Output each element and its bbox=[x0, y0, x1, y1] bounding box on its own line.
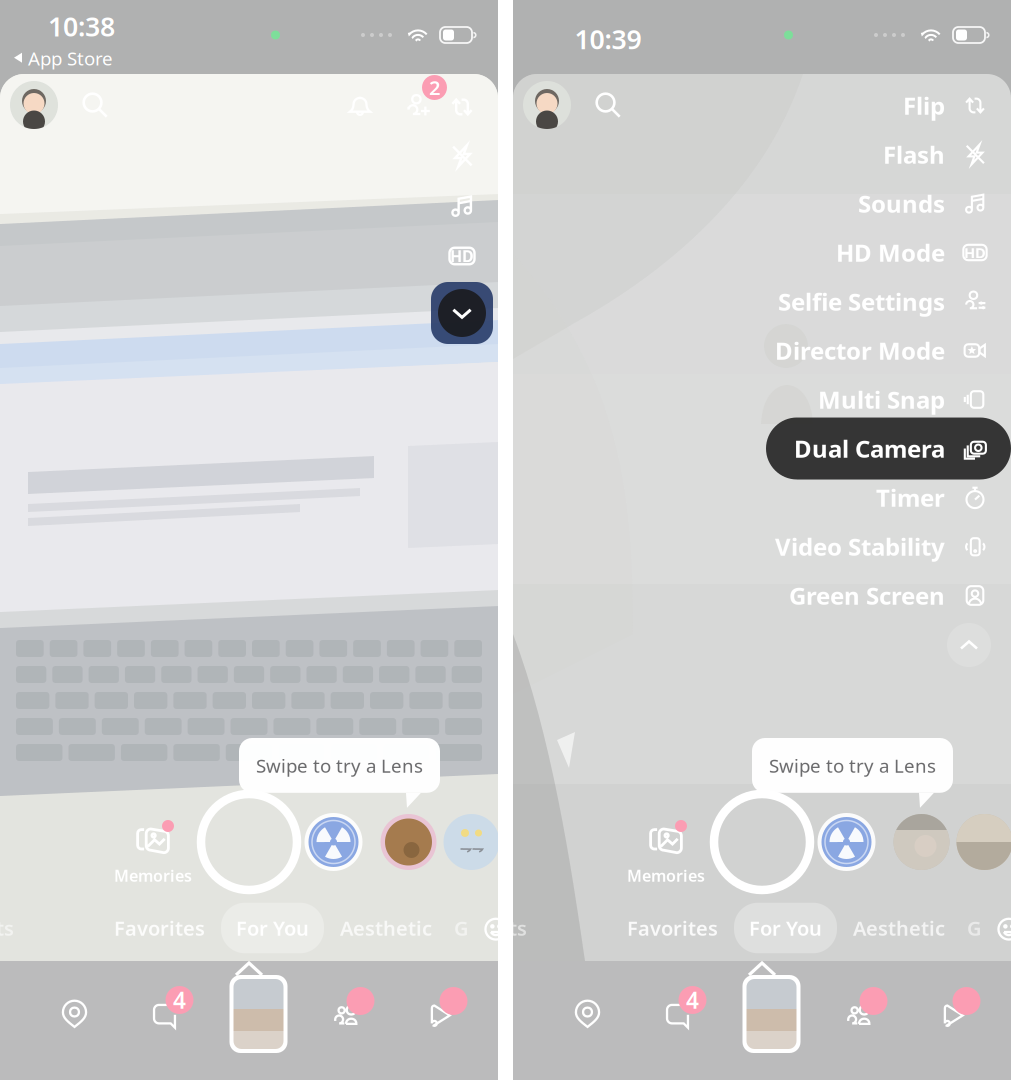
button[interactable]: For You bbox=[734, 903, 837, 953]
staticText: Dual Camera bbox=[794, 433, 945, 464]
button[interactable]: Capture bbox=[710, 790, 814, 894]
button[interactable]: Camera bbox=[725, 974, 817, 1054]
staticText: Green Screen bbox=[789, 580, 945, 611]
staticText: Flash bbox=[883, 139, 945, 170]
button[interactable]: Multi Snap bbox=[513, 368, 1011, 430]
button[interactable]: Explore lenses bbox=[990, 908, 1011, 948]
staticText: Memories bbox=[627, 865, 705, 886]
button[interactable]: Lens: Capybara bbox=[891, 812, 951, 872]
button[interactable]: Video Stability bbox=[513, 515, 1011, 577]
button[interactable]: Stories bbox=[817, 974, 909, 1054]
button[interactable]: Lens: Radiation bbox=[816, 812, 876, 872]
staticText: HD Mode bbox=[836, 237, 945, 268]
button[interactable]: Dual Camera bbox=[513, 417, 1011, 479]
button[interactable]: Explore lenses bbox=[477, 908, 517, 948]
staticText: Aesthetic bbox=[340, 915, 432, 941]
button[interactable]: Search bbox=[585, 82, 631, 128]
button[interactable]: Favorites bbox=[615, 904, 730, 952]
button[interactable]: Timer bbox=[513, 466, 1011, 528]
button[interactable]: Green Screen bbox=[513, 564, 1011, 626]
staticText: For You bbox=[236, 915, 309, 941]
staticText: Swipe to try a Lens bbox=[256, 753, 423, 778]
button[interactable]: Selfie Settings bbox=[513, 270, 1011, 332]
staticText: Selfie Settings bbox=[778, 286, 945, 317]
staticText: Director Mode bbox=[775, 335, 945, 366]
button[interactable]: Capture bbox=[197, 790, 301, 894]
staticText: Memories bbox=[114, 865, 192, 886]
button[interactable]: HD Mode bbox=[513, 221, 1011, 283]
staticText: nts bbox=[496, 915, 527, 941]
button[interactable]: Director Mode bbox=[513, 319, 1011, 381]
button[interactable]: Map bbox=[541, 974, 633, 1054]
button[interactable]: Lens: Night sky bbox=[441, 812, 501, 872]
staticText: App Store bbox=[28, 46, 113, 71]
staticText: Flip bbox=[903, 90, 945, 121]
button[interactable]: Lens: Night sky bbox=[954, 812, 1011, 872]
staticText: Aesthetic bbox=[853, 915, 945, 941]
staticText: 4 bbox=[686, 985, 699, 1015]
staticText: HD bbox=[964, 243, 986, 262]
staticText: Swipe to try a Lens bbox=[769, 753, 936, 778]
button[interactable]: Map bbox=[28, 974, 120, 1054]
button[interactable]: Chat bbox=[633, 974, 725, 1054]
button[interactable]: Profile bbox=[523, 81, 571, 129]
button[interactable]: Flip camera bbox=[438, 83, 486, 131]
staticText: Multi Snap bbox=[818, 384, 945, 415]
staticText: 4 bbox=[173, 985, 186, 1015]
staticText: Favorites bbox=[114, 915, 205, 941]
staticText: G bbox=[454, 915, 469, 941]
button[interactable]: nts bbox=[488, 904, 535, 952]
button[interactable]: Chat bbox=[120, 974, 212, 1054]
button[interactable]: Search bbox=[72, 82, 118, 128]
staticText: 10:39 bbox=[574, 21, 641, 57]
button[interactable]: Add friends bbox=[394, 81, 442, 129]
button[interactable]: Lens: Radiation bbox=[303, 812, 363, 872]
button[interactable]: Notifications bbox=[336, 81, 384, 129]
staticText: G bbox=[967, 915, 982, 941]
button[interactable]: Memories bbox=[110, 819, 196, 886]
button[interactable]: Aesthetic bbox=[328, 904, 444, 952]
button[interactable]: HD Mode bbox=[438, 232, 486, 280]
button[interactable]: Flash bbox=[513, 123, 1011, 185]
button[interactable]: Flip bbox=[513, 74, 1011, 136]
button[interactable]: Sounds bbox=[513, 172, 1011, 234]
button[interactable]: Lens: Capybara bbox=[378, 812, 438, 872]
button[interactable]: For You bbox=[221, 903, 324, 953]
button[interactable]: Sounds bbox=[438, 182, 486, 230]
button[interactable]: Stories bbox=[304, 974, 396, 1054]
button[interactable]: Camera bbox=[212, 974, 304, 1054]
staticText: Video Stability bbox=[775, 531, 945, 562]
button[interactable]: More camera tools bbox=[431, 282, 493, 344]
button[interactable]: Flash bbox=[438, 132, 486, 180]
button[interactable]: Memories bbox=[623, 819, 709, 886]
button[interactable]: Aesthetic bbox=[841, 904, 957, 952]
staticText: 2 bbox=[429, 74, 440, 101]
button[interactable]: Favorites bbox=[102, 904, 217, 952]
staticText: nts bbox=[0, 915, 14, 941]
staticText: Timer bbox=[876, 482, 945, 513]
button[interactable]: Spotlight bbox=[396, 974, 488, 1054]
staticText: HD bbox=[450, 245, 474, 267]
button[interactable]: Profile bbox=[10, 81, 58, 129]
button[interactable]: nts bbox=[0, 904, 22, 952]
staticText: Favorites bbox=[627, 915, 718, 941]
button[interactable]: Collapse tools bbox=[947, 623, 991, 667]
staticText: For You bbox=[749, 915, 822, 941]
staticText: Sounds bbox=[858, 188, 945, 219]
staticText: 10:38 bbox=[48, 8, 115, 44]
button[interactable]: Spotlight bbox=[909, 974, 1001, 1054]
